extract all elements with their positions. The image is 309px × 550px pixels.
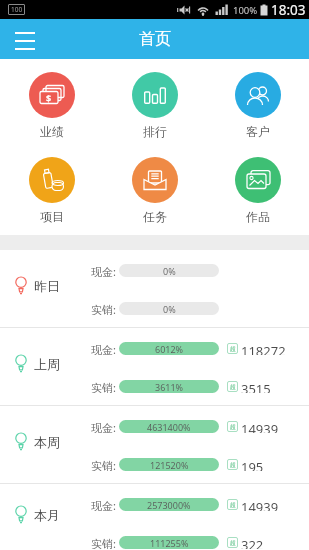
staticText: 超: [230, 501, 236, 509]
staticText: 18:03: [271, 1, 306, 19]
staticText: 14939: [241, 498, 279, 511]
staticText: 4631400%: [147, 421, 191, 433]
staticText: 0%: [163, 265, 176, 277]
staticText: 昨日: [34, 278, 60, 294]
staticText: 100: [11, 5, 23, 14]
button[interactable]: [15, 32, 35, 50]
staticText: 超: [230, 461, 236, 469]
staticText: 首页: [139, 29, 171, 49]
staticText: 客户: [246, 124, 270, 139]
staticText: 14939: [241, 420, 279, 433]
staticText: 6012%: [155, 343, 184, 355]
staticText: 111255%: [150, 537, 189, 549]
staticText: 实销:: [91, 536, 116, 549]
staticText: 3515: [241, 380, 271, 393]
button[interactable]: 本周: [0, 406, 309, 483]
button[interactable]: 本月: [0, 484, 309, 550]
staticText: 项目: [40, 209, 64, 224]
staticText: 本月: [34, 507, 60, 523]
staticText: 现金:: [91, 498, 116, 511]
button[interactable]: 上周: [0, 328, 309, 405]
button[interactable]: $: [0, 72, 103, 139]
button[interactable]: 项目: [0, 157, 103, 224]
staticText: 实销:: [91, 302, 116, 315]
staticText: 超: [230, 345, 236, 353]
staticText: 3611%: [155, 381, 184, 393]
button[interactable]: 昨日: [0, 250, 309, 327]
button[interactable]: 客户: [206, 72, 309, 139]
staticText: 实销:: [91, 380, 116, 393]
staticText: 实销:: [91, 458, 116, 471]
button[interactable]: 任务: [103, 157, 206, 224]
staticText: 118272: [241, 342, 286, 355]
staticText: 排行: [143, 124, 167, 139]
staticText: 195: [241, 458, 264, 471]
staticText: 本周: [34, 434, 60, 450]
staticText: 100%: [233, 4, 258, 17]
staticText: 现金:: [91, 264, 116, 277]
staticText: 2573000%: [147, 499, 191, 511]
staticText: 322: [241, 536, 264, 549]
staticText: 超: [230, 423, 236, 431]
button[interactable]: 排行: [103, 72, 206, 139]
staticText: 超: [230, 383, 236, 391]
staticText: 现金:: [91, 420, 116, 433]
staticText: 业绩: [40, 124, 64, 139]
staticText: 121520%: [150, 459, 189, 471]
button[interactable]: 作品: [206, 157, 309, 224]
staticText: 0%: [163, 303, 176, 315]
staticText: 现金:: [91, 342, 116, 355]
staticText: 作品: [246, 209, 270, 224]
staticText: 任务: [143, 209, 167, 224]
staticText: $: [46, 92, 52, 104]
staticText: 上周: [34, 356, 60, 372]
staticText: 超: [230, 539, 236, 547]
